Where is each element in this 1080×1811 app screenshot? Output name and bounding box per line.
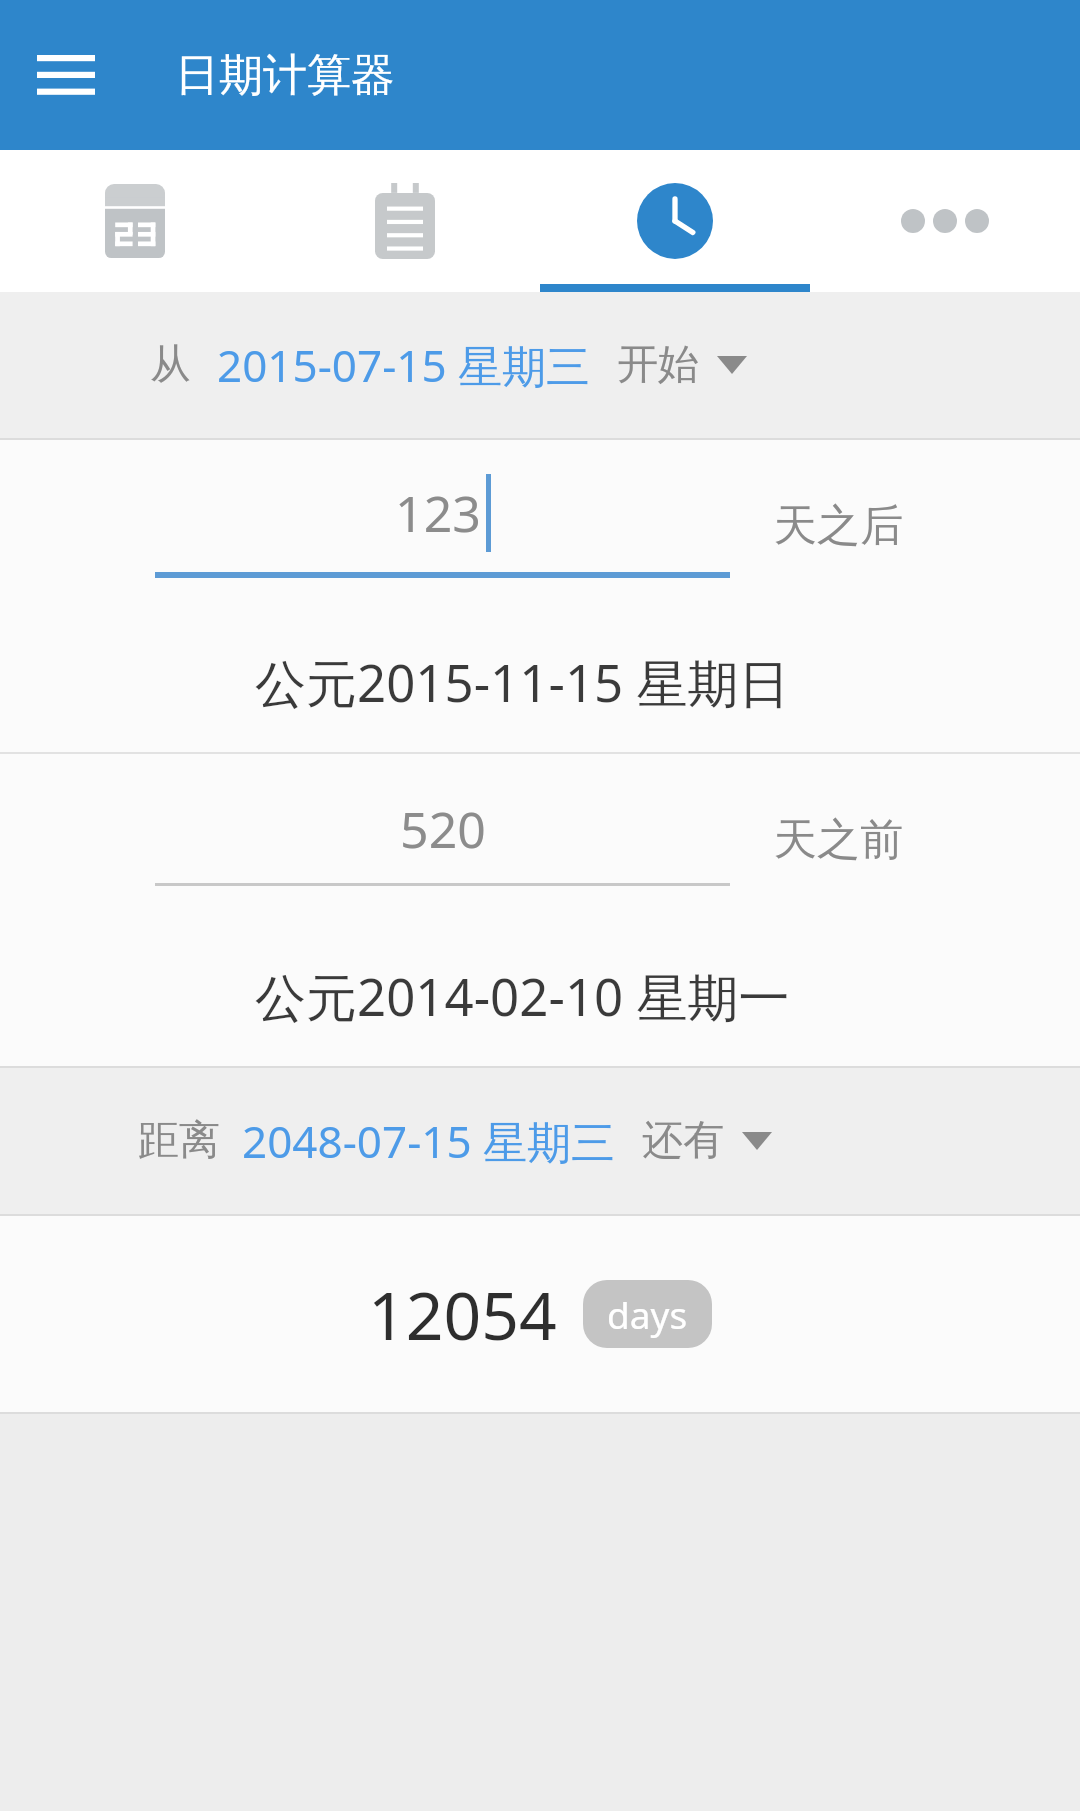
button[interactable]: Notes tab [270, 150, 540, 292]
staticText: 还有 [642, 1115, 724, 1167]
staticText: 12054 [368, 1269, 557, 1359]
staticText: 公元2015-11-15 星期日 [255, 647, 790, 717]
button[interactable]: 520 [155, 795, 730, 886]
button[interactable]: More options [810, 150, 1080, 292]
button[interactable]: 123 [155, 474, 730, 578]
staticText: 123 [395, 479, 481, 547]
button[interactable]: 从 [0, 292, 1080, 438]
button[interactable]: Menu [28, 37, 104, 113]
button[interactable]: 12054 [0, 1216, 1080, 1412]
staticText: 从 [150, 339, 191, 391]
staticText: days [607, 1289, 688, 1339]
staticText: 2015-07-15 星期三 [217, 335, 591, 395]
staticText: 2048-07-15 星期三 [242, 1111, 616, 1171]
staticText: 天之后 [774, 499, 903, 553]
staticText: 开始 [617, 339, 699, 391]
staticText: 日期计算器 [175, 48, 395, 103]
button[interactable]: 距离 [0, 1068, 1080, 1214]
staticText: 公元2014-02-10 星期一 [255, 961, 790, 1031]
staticText: 距离 [138, 1115, 220, 1167]
staticText: 520 [400, 795, 486, 863]
button[interactable]: Clock tab [540, 150, 810, 292]
staticText: 天之前 [774, 813, 903, 867]
button[interactable]: Date tab [0, 150, 270, 292]
